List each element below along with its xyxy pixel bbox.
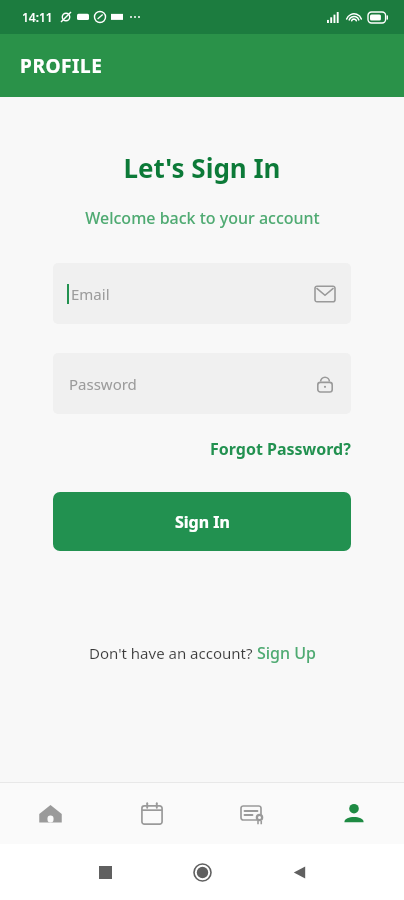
button[interactable]: Back	[278, 851, 320, 893]
button[interactable]: Home	[181, 851, 223, 893]
staticText: Sign In	[175, 511, 230, 533]
button[interactable]: Profile	[303, 783, 404, 844]
staticText: 14:11	[22, 9, 53, 25]
button[interactable]: Home	[0, 783, 101, 844]
button[interactable]: Email	[53, 263, 351, 324]
staticText: Email	[71, 284, 110, 304]
button[interactable]: Sign In	[53, 492, 351, 551]
staticText: Password	[69, 374, 137, 394]
button[interactable]: Calendar	[101, 783, 202, 844]
staticText: Welcome back to your account	[85, 207, 320, 229]
button[interactable]: Sign Up	[257, 642, 316, 664]
staticText: Forgot Password?	[210, 438, 351, 460]
button[interactable]: Forgot Password?	[210, 435, 351, 463]
staticText: Let's Sign In	[123, 150, 281, 185]
staticText: Don't have an account?	[89, 643, 257, 663]
button[interactable]: Recents	[84, 851, 126, 893]
button[interactable]: Certificates	[202, 783, 303, 844]
button[interactable]: Password	[53, 353, 351, 414]
staticText: Sign Up	[257, 642, 316, 664]
staticText: PROFILE	[20, 53, 103, 79]
